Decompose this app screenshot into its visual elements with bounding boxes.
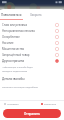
- staticText: Другая причина: [2, 59, 25, 63]
- staticText: Мошенничество: [2, 47, 25, 51]
- button[interactable]: Ненормативная лексика: [0, 28, 64, 34]
- staticText: Копия мне: [44, 103, 56, 106]
- button[interactable]: Насилие: [0, 40, 64, 46]
- staticText: Анонимно: [7, 103, 19, 106]
- staticText: Насилие: [2, 41, 14, 45]
- staticText: Отправить: [24, 112, 40, 116]
- staticText: Запрещённый товар: [2, 53, 30, 57]
- staticText: Ненормативная лексика: [2, 29, 35, 33]
- staticText: Детали жалобы: [2, 77, 25, 81]
- button[interactable]: Мошенничество: [0, 46, 64, 52]
- button[interactable]: Запрещённый товар: [0, 52, 64, 58]
- staticText: Пожаловаться: [1, 13, 22, 17]
- button[interactable]: Пожаловаться: [0, 9, 23, 20]
- button[interactable]: Отправить: [3, 109, 61, 118]
- staticText: передана модераторам: [2, 70, 28, 73]
- button[interactable]: Другая причина: [0, 58, 64, 64]
- staticText: Информация о жалобе будет: [2, 66, 33, 69]
- button[interactable]: Спам или реклама: [0, 22, 64, 28]
- staticText: Оскорбление: [2, 35, 20, 39]
- staticText: Спам или реклама: [2, 23, 27, 27]
- button[interactable]: Закрыть: [23, 9, 49, 20]
- button[interactable]: Оскорбление: [0, 34, 64, 40]
- staticText: Закрыть: [30, 13, 42, 17]
- staticText: Опишите ситуацию подробнее: [2, 85, 38, 88]
